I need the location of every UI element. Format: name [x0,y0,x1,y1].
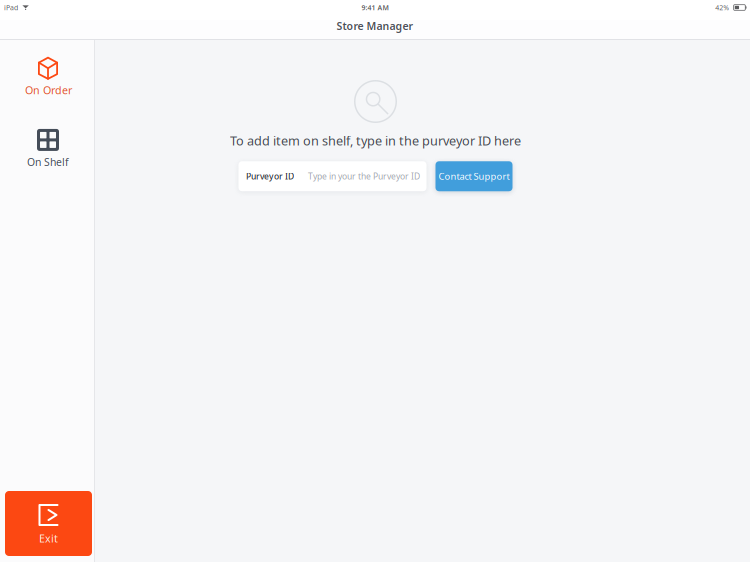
staticText: Contact Support [438,170,509,183]
staticText: Type in your the Purveyor ID [308,170,420,182]
staticText: To add item on shelf, type in the purvey… [230,132,521,149]
button[interactable]: Exit [5,491,92,556]
staticText: Purveyor ID [246,170,294,182]
button[interactable]: On Shelf [0,115,94,174]
staticText: Exit [39,531,58,545]
staticText: On Shelf [27,155,69,169]
button[interactable]: Contact Support [435,161,512,191]
staticText: 42% [715,3,729,12]
staticText: On Order [25,83,72,97]
button[interactable]: Purveyor ID [238,161,426,191]
button[interactable]: On Order [0,40,94,99]
staticText: iPad [4,3,18,12]
staticText: Store Manager [336,19,413,33]
staticText: 9:41 AM [361,3,388,12]
